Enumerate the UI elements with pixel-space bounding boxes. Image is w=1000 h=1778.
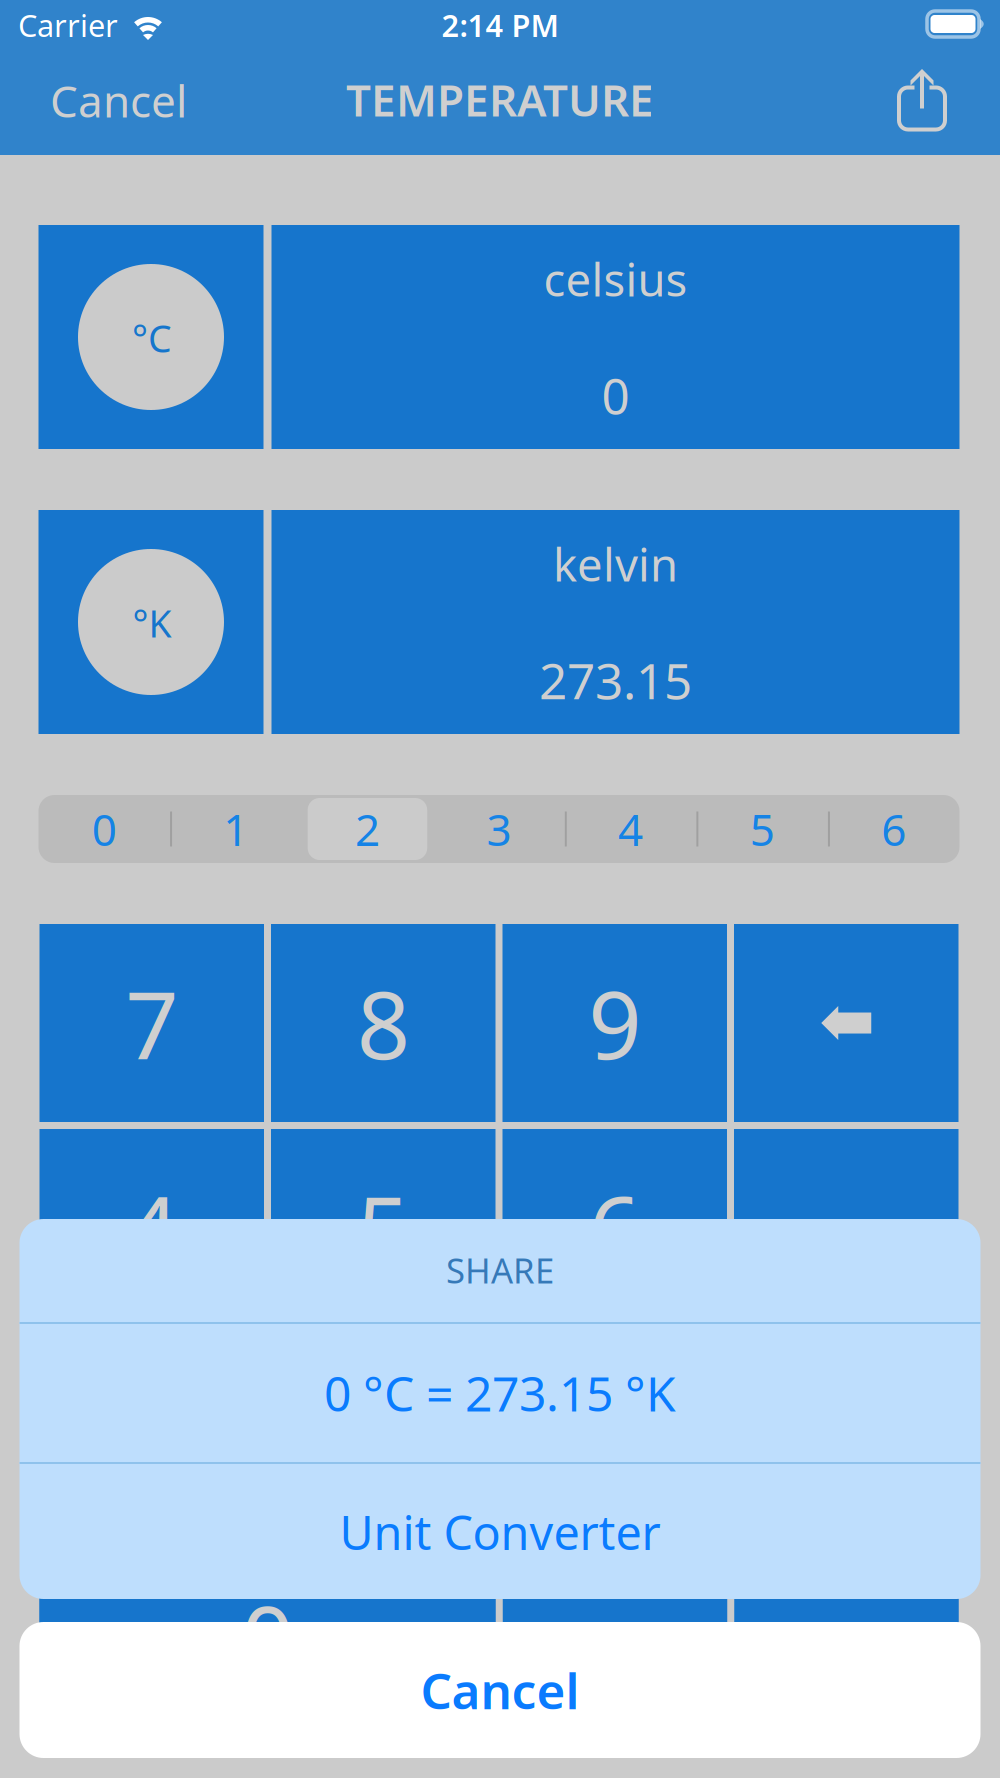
staticText: 273.15 <box>539 647 692 713</box>
button[interactable]: 0 <box>39 1539 496 1737</box>
button[interactable]: 6 <box>828 795 959 863</box>
staticText: 4 <box>618 800 643 858</box>
button[interactable]: 6 <box>502 1129 727 1327</box>
staticText: °C <box>132 313 172 363</box>
button[interactable]: 5 <box>696 795 828 863</box>
button[interactable]: 3 <box>433 795 565 863</box>
staticText: 0 <box>92 800 117 858</box>
staticText: 3 <box>588 1371 641 1495</box>
staticText: 6 <box>588 1166 641 1290</box>
button[interactable]: 5 <box>271 1129 495 1327</box>
staticText: 2 <box>355 800 380 858</box>
staticText: °K <box>132 598 171 648</box>
button[interactable]: °C <box>38 225 959 449</box>
button[interactable]: 1 <box>39 1334 264 1532</box>
staticText: 1 <box>223 800 248 858</box>
staticText: 2 <box>357 1371 410 1495</box>
button[interactable]: 2 <box>302 795 433 863</box>
staticText: celsius <box>543 249 687 309</box>
staticText: 9 <box>588 961 641 1085</box>
button[interactable]: Cancel <box>19 1622 980 1758</box>
staticText: Cancel <box>50 71 187 130</box>
staticText: . <box>602 1576 627 1700</box>
button[interactable]: 3 <box>502 1334 727 1532</box>
button[interactable]: . <box>503 1539 727 1737</box>
button[interactable]: 8 <box>271 924 495 1122</box>
button[interactable] <box>734 1539 959 1737</box>
staticText: 7 <box>125 961 178 1085</box>
button[interactable]: 0 <box>38 795 170 863</box>
button[interactable]: 1 <box>170 795 302 863</box>
staticText: Unit Converter <box>339 1501 660 1563</box>
button[interactable] <box>734 1334 958 1532</box>
staticText: 5 <box>750 800 775 858</box>
button[interactable]: Delete <box>734 924 958 1122</box>
button[interactable]: 9 <box>502 924 727 1122</box>
staticText: 5 <box>357 1166 410 1290</box>
button[interactable]: 4 <box>39 1129 264 1327</box>
button[interactable]: Share <box>868 49 976 152</box>
staticText: 0 °C = 273.15 °K <box>324 1361 676 1425</box>
staticText: kelvin <box>553 534 678 594</box>
staticText: 4 <box>125 1166 178 1290</box>
staticText: Cancel <box>420 1657 579 1723</box>
button[interactable]: 4 <box>565 795 696 863</box>
button[interactable]: Unit Converter <box>19 1464 980 1600</box>
staticText: TEMPERATURE <box>346 70 654 129</box>
staticText: 0 <box>241 1576 294 1700</box>
button[interactable]: 7 <box>39 924 264 1122</box>
button[interactable] <box>734 1129 958 1327</box>
staticText: 3 <box>486 800 511 858</box>
staticText: SHARE <box>446 1247 554 1293</box>
staticText: 8 <box>357 961 410 1085</box>
staticText: 6 <box>881 800 906 858</box>
button[interactable]: Cancel <box>24 49 213 152</box>
staticText: 2:14 PM <box>441 5 558 45</box>
staticText: 1 <box>125 1371 178 1495</box>
button[interactable]: °K <box>38 510 959 734</box>
button[interactable]: 0 °C = 273.15 °K <box>19 1324 980 1462</box>
staticText: Carrier <box>18 5 118 45</box>
staticText: 0 <box>601 362 629 428</box>
button[interactable]: 2 <box>271 1334 495 1532</box>
